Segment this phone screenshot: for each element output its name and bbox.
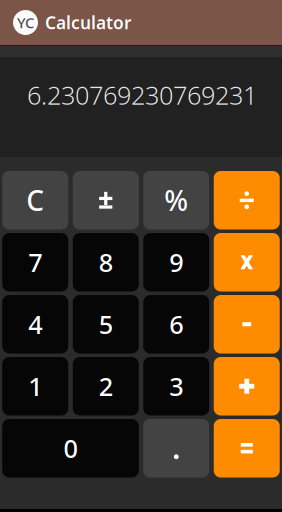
button[interactable]: Plus xyxy=(214,357,280,415)
staticText: 6.230769230769231 xyxy=(27,78,257,112)
staticText: 5 xyxy=(99,307,113,341)
button[interactable]: Divide xyxy=(214,171,280,229)
staticText: Calculator xyxy=(45,11,132,34)
button[interactable]: Decimal point xyxy=(143,419,209,477)
staticText: YC xyxy=(17,13,34,32)
button[interactable]: 4 xyxy=(2,295,68,353)
button[interactable]: Equals xyxy=(214,419,280,477)
staticText: 3 xyxy=(169,369,183,403)
button[interactable]: 8 xyxy=(73,233,139,291)
button[interactable]: 9 xyxy=(143,233,209,291)
staticText: 8 xyxy=(99,245,113,279)
button[interactable]: 3 xyxy=(143,357,209,415)
button[interactable]: C xyxy=(2,171,68,229)
button[interactable]: 5 xyxy=(73,295,139,353)
staticText: 4 xyxy=(28,307,42,341)
button[interactable]: Plus or minus xyxy=(73,171,139,229)
staticText: 0 xyxy=(63,431,77,465)
staticText: 2 xyxy=(99,369,113,403)
button[interactable]: 2 xyxy=(73,357,139,415)
staticText: 9 xyxy=(169,245,183,279)
button[interactable]: 1 xyxy=(2,357,68,415)
button[interactable]: Minus xyxy=(214,295,280,353)
button[interactable]: 7 xyxy=(2,233,68,291)
staticText: 7 xyxy=(28,245,42,279)
button[interactable]: Multiply xyxy=(214,233,280,291)
button[interactable]: % xyxy=(143,171,209,229)
staticText: C xyxy=(26,182,44,219)
button[interactable]: 6 xyxy=(143,295,209,353)
staticText: % xyxy=(164,182,188,219)
button[interactable]: 0 xyxy=(2,419,139,477)
staticText: 1 xyxy=(28,369,42,403)
staticText: 6 xyxy=(169,307,183,341)
